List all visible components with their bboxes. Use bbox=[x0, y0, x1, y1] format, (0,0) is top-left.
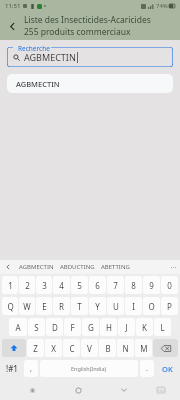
button[interactable]: Home bbox=[68, 380, 88, 400]
staticText: B bbox=[105, 343, 111, 354]
button[interactable]: S bbox=[28, 318, 45, 336]
button[interactable]: T bbox=[71, 297, 88, 315]
button[interactable]: ABDUCTING bbox=[60, 260, 95, 274]
button[interactable]: K bbox=[136, 318, 153, 336]
staticText: I bbox=[132, 301, 135, 312]
button[interactable]: Hide keyboard bbox=[114, 380, 134, 400]
button[interactable]: I bbox=[125, 297, 142, 315]
button[interactable]: U bbox=[107, 297, 124, 315]
staticText: ABETTING bbox=[101, 263, 130, 271]
button[interactable]: A bbox=[9, 318, 27, 336]
button[interactable]: AGBMECTIN bbox=[7, 74, 173, 93]
button[interactable]: 1 bbox=[2, 276, 18, 294]
button[interactable]: Previous suggestions bbox=[0, 260, 16, 274]
button[interactable]: 7 bbox=[107, 276, 124, 294]
button[interactable]: C bbox=[63, 339, 80, 357]
staticText: 2 bbox=[25, 280, 30, 291]
button[interactable]: , bbox=[24, 360, 38, 377]
button[interactable]: AGBMECTIN bbox=[19, 260, 54, 274]
button[interactable]: B bbox=[99, 339, 116, 357]
button[interactable]: V bbox=[81, 339, 98, 357]
staticText: 6 bbox=[95, 280, 100, 291]
staticText: AGBMECTIN bbox=[19, 263, 54, 271]
button[interactable]: Y bbox=[89, 297, 106, 315]
staticText: N bbox=[122, 343, 129, 354]
button[interactable]: 4 bbox=[53, 276, 70, 294]
button[interactable]: 5 bbox=[71, 276, 88, 294]
staticText: 7 bbox=[113, 280, 118, 291]
button[interactable]: F bbox=[64, 318, 81, 336]
button[interactable]: Q bbox=[2, 297, 18, 315]
button[interactable]: H bbox=[100, 318, 117, 336]
staticText: 8 bbox=[131, 280, 136, 291]
staticText: O bbox=[148, 301, 155, 312]
staticText: J bbox=[125, 322, 128, 333]
button[interactable]: English(India) bbox=[40, 360, 138, 377]
button[interactable]: Z bbox=[27, 339, 44, 357]
button[interactable]: 9 bbox=[143, 276, 160, 294]
staticText: 255 produits commerciaux bbox=[24, 26, 131, 38]
staticText: 3 bbox=[42, 280, 47, 291]
staticText: 9 bbox=[149, 280, 154, 291]
button[interactable]: Shift bbox=[2, 339, 26, 357]
staticText: F bbox=[70, 322, 75, 333]
button[interactable]: 2 bbox=[19, 276, 35, 294]
button[interactable]: . bbox=[140, 360, 154, 377]
staticText: AGBMECTIN bbox=[16, 79, 60, 89]
button[interactable]: More options bbox=[166, 260, 180, 274]
staticText: Y bbox=[95, 301, 100, 312]
button[interactable]: 0 bbox=[161, 276, 178, 294]
button[interactable]: N bbox=[117, 339, 134, 357]
staticText: E bbox=[42, 301, 47, 312]
button[interactable]: X bbox=[45, 339, 62, 357]
staticText: Liste des Insecticides-Acaricides bbox=[24, 14, 151, 26]
staticText: W bbox=[23, 301, 31, 312]
staticText: 1 bbox=[8, 280, 13, 291]
button[interactable]: 6 bbox=[89, 276, 106, 294]
button[interactable]: !#1 bbox=[2, 360, 22, 377]
staticText: M bbox=[140, 343, 148, 354]
staticText: D bbox=[52, 322, 58, 333]
button[interactable]: L bbox=[154, 318, 171, 336]
staticText: Q bbox=[7, 301, 14, 312]
staticText: V bbox=[87, 343, 92, 354]
staticText: T bbox=[77, 301, 82, 312]
staticText: C bbox=[69, 343, 75, 354]
button[interactable]: Keyboard layout bbox=[152, 381, 170, 399]
button[interactable]: Back bbox=[0, 12, 24, 40]
button[interactable]: ABETTING bbox=[101, 260, 130, 274]
button[interactable]: 8 bbox=[125, 276, 142, 294]
button[interactable]: 3 bbox=[36, 276, 52, 294]
staticText: P bbox=[167, 301, 172, 312]
staticText: 11:51 bbox=[5, 2, 21, 10]
button[interactable]: E bbox=[36, 297, 52, 315]
staticText: OK bbox=[162, 364, 173, 374]
staticText: 74% bbox=[156, 2, 168, 10]
button[interactable]: OK bbox=[156, 360, 178, 377]
button[interactable]: J bbox=[118, 318, 135, 336]
staticText: !#1 bbox=[6, 363, 18, 374]
staticText: X bbox=[51, 343, 56, 354]
staticText: Z bbox=[33, 343, 38, 354]
staticText: Recherche bbox=[18, 44, 50, 53]
staticText: . bbox=[146, 364, 148, 374]
button[interactable]: G bbox=[82, 318, 99, 336]
staticText: 4 bbox=[59, 280, 64, 291]
staticText: L bbox=[160, 322, 165, 333]
staticText: English(India) bbox=[71, 365, 107, 372]
staticText: R bbox=[59, 301, 64, 312]
staticText: , bbox=[30, 364, 32, 374]
staticText: 0 bbox=[167, 280, 172, 291]
button[interactable]: W bbox=[19, 297, 35, 315]
button[interactable]: O bbox=[143, 297, 160, 315]
button[interactable]: Backspace bbox=[153, 339, 178, 357]
button[interactable]: M bbox=[135, 339, 152, 357]
button[interactable]: Recents bbox=[22, 380, 42, 400]
button[interactable]: AGBMECTIN bbox=[7, 47, 173, 67]
staticText: A bbox=[15, 322, 21, 333]
button[interactable]: D bbox=[46, 318, 63, 336]
button[interactable]: R bbox=[53, 297, 70, 315]
staticText: AGBMECTIN bbox=[24, 51, 76, 63]
staticText: H bbox=[106, 322, 112, 333]
button[interactable]: P bbox=[161, 297, 178, 315]
